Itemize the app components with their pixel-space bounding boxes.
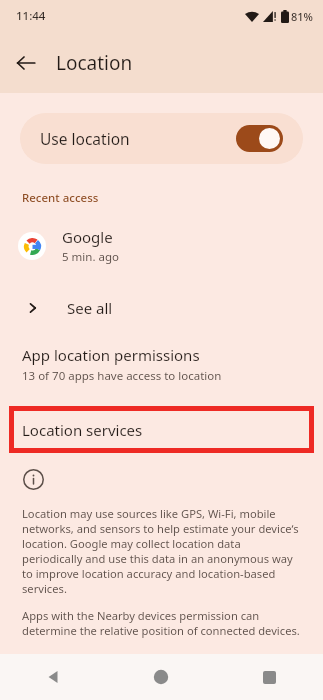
staticText: App location permissions [22, 345, 200, 365]
button[interactable]: Recent apps [215, 654, 323, 700]
button[interactable]: See all [0, 288, 323, 328]
staticText: Apps with the Nearby devices permission … [22, 608, 301, 638]
staticText: 13 of 70 apps have access to location [22, 368, 222, 384]
staticText: Google [62, 227, 113, 247]
button[interactable]: Use location [20, 113, 303, 164]
staticText: 5 min. ago [62, 249, 119, 265]
button[interactable]: Home [107, 654, 215, 700]
staticText: 11:44 [16, 8, 46, 24]
staticText: Location [56, 50, 133, 76]
staticText: Use location [40, 128, 236, 149]
button[interactable]: Google [0, 222, 323, 270]
staticText: Location may use sources like GPS, Wi-Fi… [22, 506, 301, 596]
button[interactable]: Location services [9, 406, 314, 453]
button[interactable]: Back [9, 46, 43, 80]
staticText: See all [67, 298, 113, 318]
staticText: Location services [22, 420, 143, 440]
staticText: 81% [291, 9, 313, 24]
button[interactable]: Back [0, 654, 107, 700]
button[interactable]: App location permissions [0, 343, 323, 390]
button[interactable]: Use location toggle [236, 125, 283, 152]
staticText: Recent access [22, 190, 99, 206]
